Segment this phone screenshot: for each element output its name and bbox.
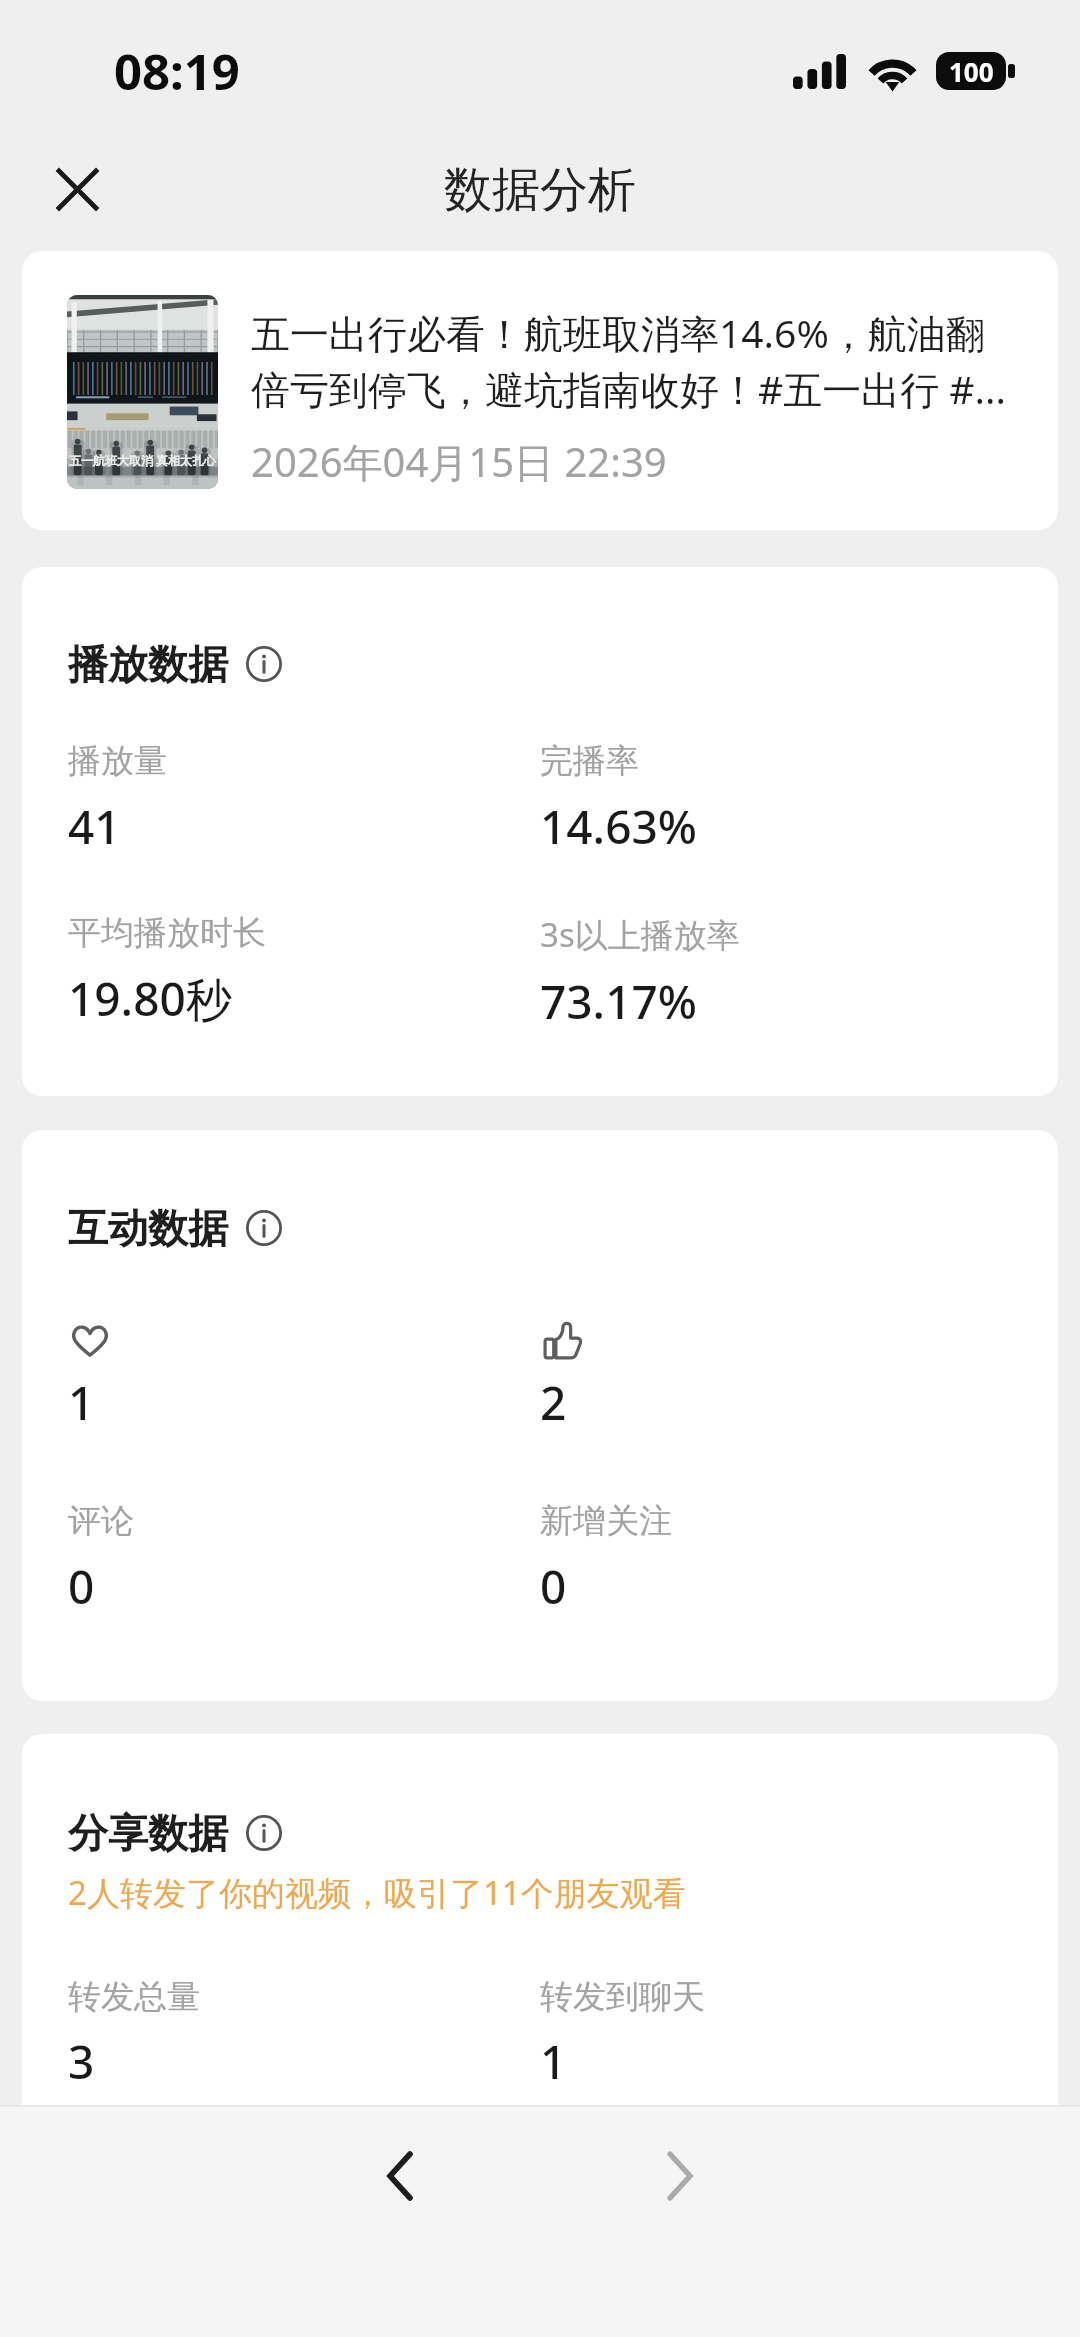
staticText: 五一航班大取消 真相太扎心 <box>69 452 217 468</box>
staticText: 五一出行必看！航班取消率14.6%，航油翻 <box>251 306 985 359</box>
staticText: 1 <box>68 1371 95 1434</box>
staticText: 倍亏到停飞，避坑指南收好！#五一出行 #... <box>251 362 1006 415</box>
staticText: 19.80秒 <box>68 967 232 1030</box>
staticText: 分享数据 <box>68 1808 228 1858</box>
button[interactable]: Info <box>242 1811 286 1855</box>
button[interactable]: Close <box>22 140 132 239</box>
staticText: 14.63% <box>540 795 697 858</box>
staticText: 完播率 <box>540 740 639 782</box>
staticText: 100 <box>949 54 994 89</box>
staticText: 数据分析 <box>444 160 636 220</box>
staticText: 播放量 <box>68 740 167 782</box>
button[interactable]: 五一航班大取消 真相太扎心 <box>22 251 1058 530</box>
staticText: 1 <box>540 2030 567 2093</box>
staticText: 0 <box>540 1555 567 1618</box>
button[interactable]: Next <box>630 2126 730 2226</box>
staticText: 互动数据 <box>68 1203 228 1253</box>
staticText: 2 <box>540 1371 567 1434</box>
staticText: 3 <box>68 2030 95 2093</box>
staticText: 41 <box>68 795 121 858</box>
staticText: 转发到聊天 <box>540 1976 705 2018</box>
staticText: 新增关注 <box>540 1500 672 1542</box>
button[interactable]: Info <box>242 642 286 686</box>
button[interactable]: Previous <box>350 2126 450 2226</box>
staticText: 播放数据 <box>68 639 228 689</box>
staticText: 平均播放时长 <box>68 912 266 954</box>
staticText: 0 <box>68 1555 95 1618</box>
staticText: 评论 <box>68 1500 134 1542</box>
staticText: 3s以上播放率 <box>540 912 740 957</box>
staticText: 73.17% <box>540 970 697 1033</box>
button[interactable]: Info <box>242 1206 286 1250</box>
staticText: 2人转发了你的视频，吸引了11个朋友观看 <box>68 1870 686 1915</box>
staticText: 转发总量 <box>68 1976 200 2018</box>
staticText: 08:19 <box>114 38 240 105</box>
staticText: 2026年04月15日 22:39 <box>251 434 667 489</box>
staticText: 转发到群聊 <box>540 2153 705 2195</box>
